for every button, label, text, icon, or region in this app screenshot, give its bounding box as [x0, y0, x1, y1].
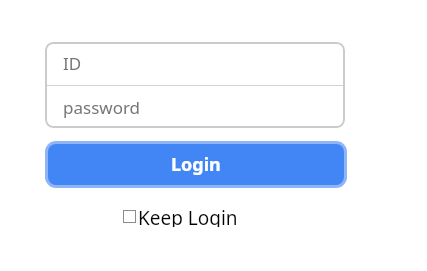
- staticText: Keep Login: [138, 205, 238, 227]
- staticText: Login: [171, 152, 221, 177]
- other: Keep Login checkbox: [123, 210, 136, 223]
- button[interactable]: ID: [45, 42, 345, 85]
- staticText: password: [63, 96, 141, 119]
- button[interactable]: password: [45, 86, 345, 128]
- button[interactable]: Login: [45, 141, 347, 188]
- staticText: ID: [63, 52, 82, 75]
- button[interactable]: Keep Login checkbox: [0, 205, 427, 227]
